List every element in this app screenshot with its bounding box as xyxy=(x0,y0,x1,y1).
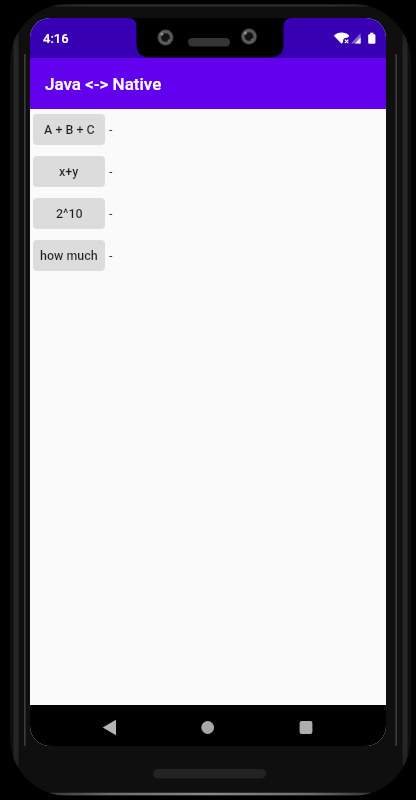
staticText: - xyxy=(109,206,113,221)
staticText: 2^10 xyxy=(56,206,83,221)
staticText: - xyxy=(109,248,113,263)
staticText: how much xyxy=(40,248,98,263)
button[interactable]: 2^10 xyxy=(33,198,105,229)
staticText: - xyxy=(109,122,113,137)
button[interactable]: x+y xyxy=(33,156,105,187)
staticText: - xyxy=(109,164,113,179)
staticText: Java <-> Native xyxy=(45,74,162,94)
staticText: 4:16 xyxy=(43,31,69,46)
button[interactable]: A + B + C xyxy=(33,114,105,145)
button[interactable]: how much xyxy=(33,240,105,271)
staticText: A + B + C xyxy=(44,122,95,137)
staticText: x+y xyxy=(59,164,79,179)
